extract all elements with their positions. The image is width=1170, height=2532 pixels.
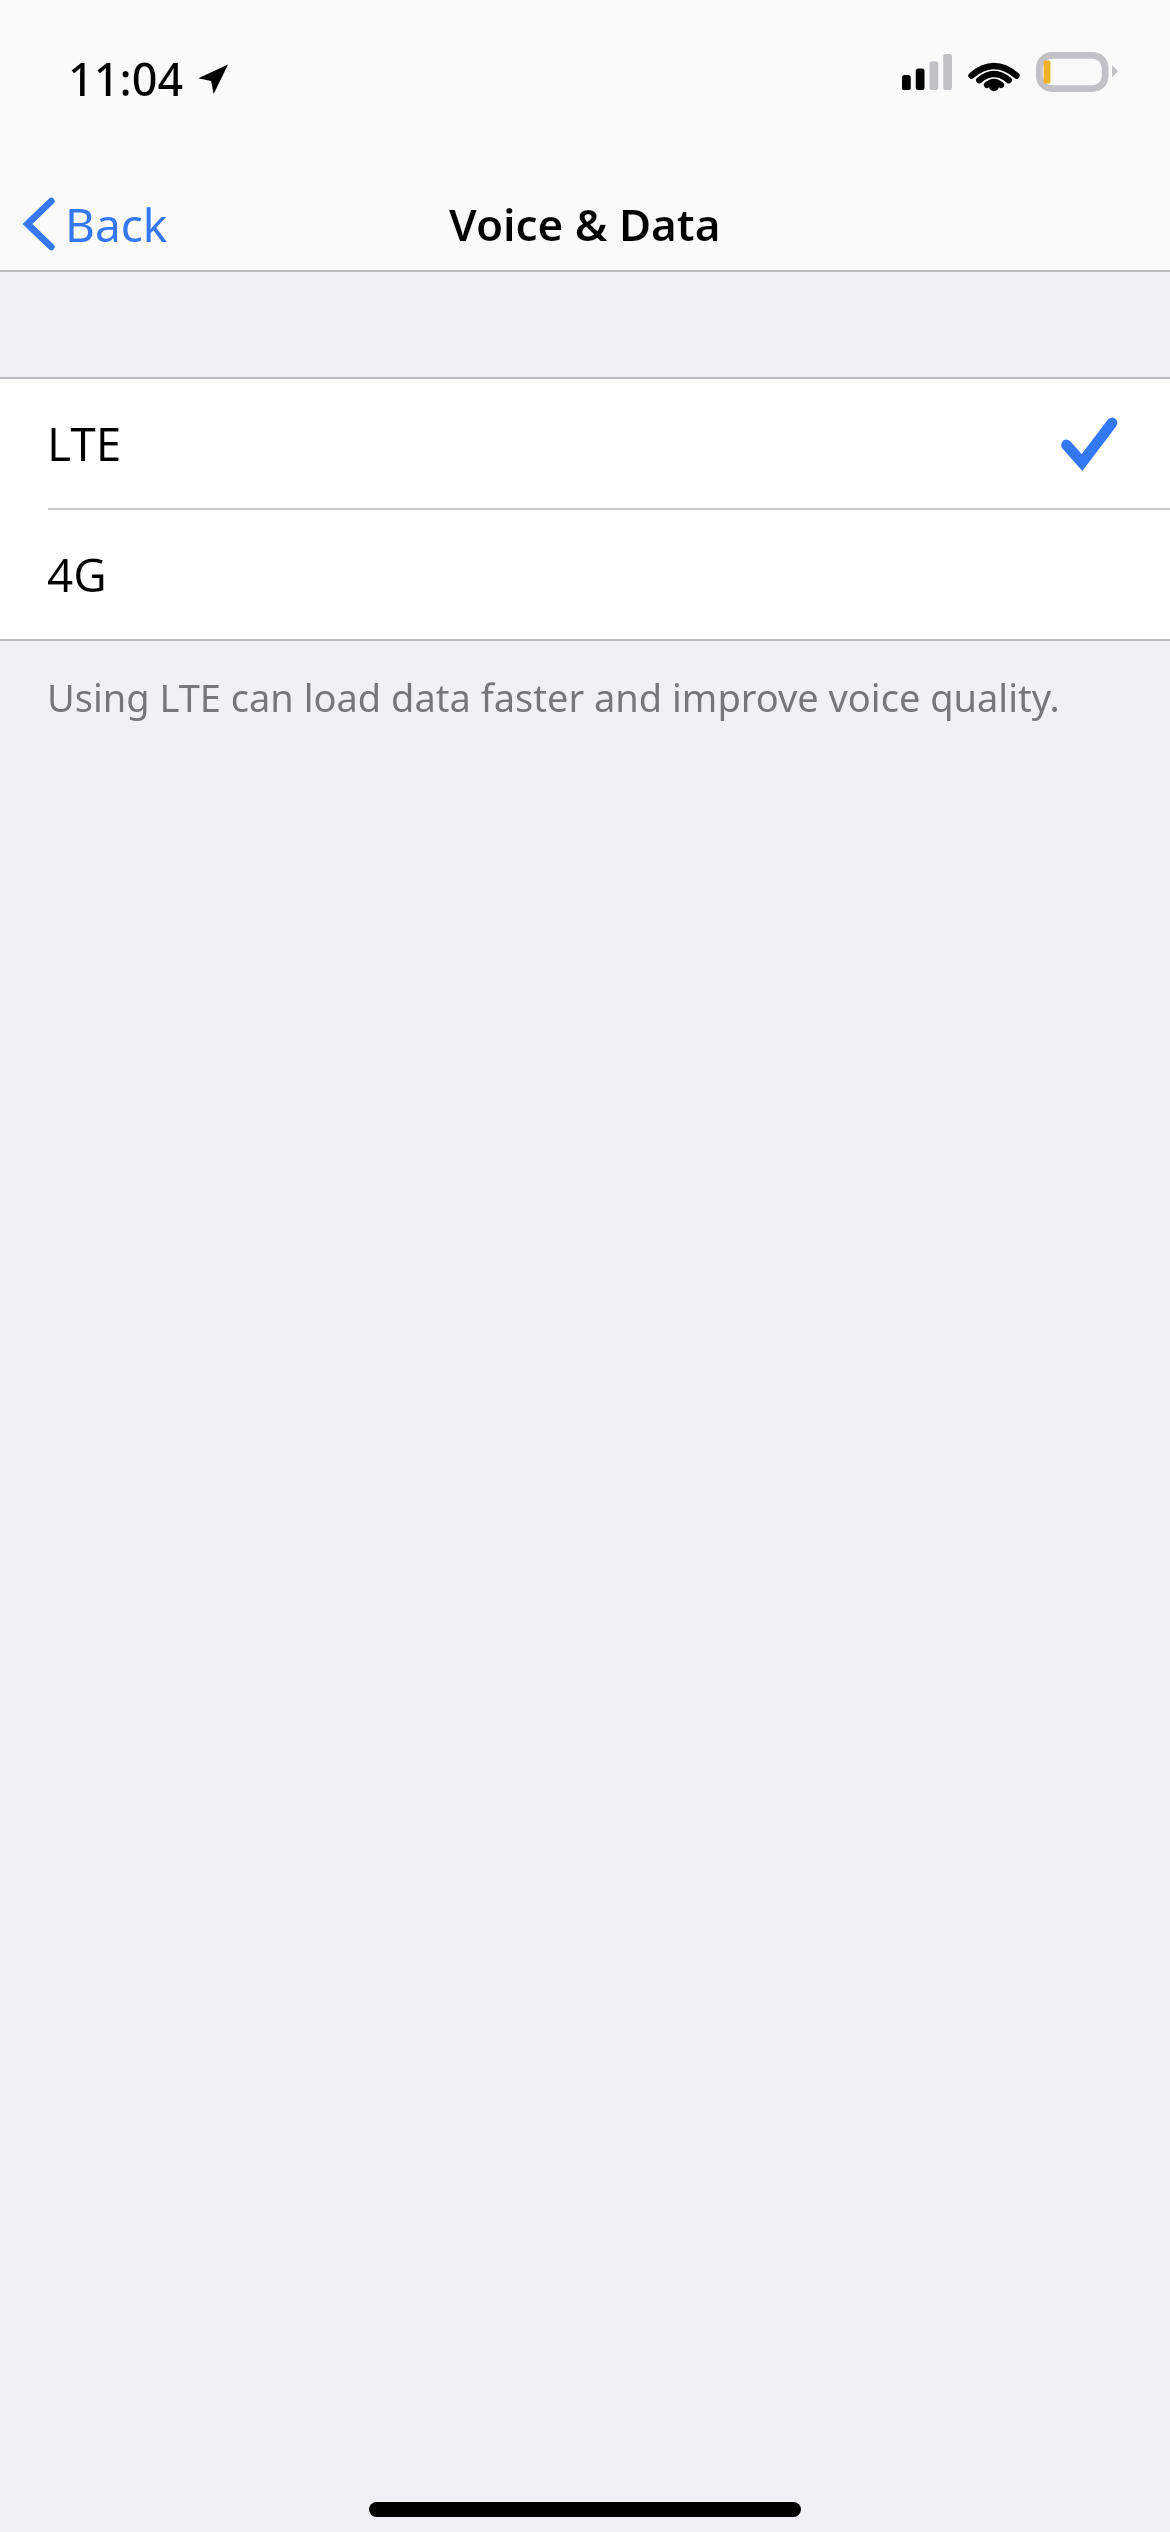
staticText: 4G: [47, 543, 107, 606]
other: Selected: [1064, 419, 1114, 469]
staticText: Voice & Data: [449, 194, 721, 254]
button[interactable]: 4G: [0, 510, 1170, 639]
staticText: 11:04: [68, 48, 184, 109]
staticText: Using LTE can load data faster and impro…: [47, 671, 1060, 723]
staticText: Back: [65, 193, 168, 256]
button[interactable]: Back: [0, 176, 190, 272]
button[interactable]: LTE: [0, 379, 1170, 508]
staticText: LTE: [47, 412, 122, 475]
